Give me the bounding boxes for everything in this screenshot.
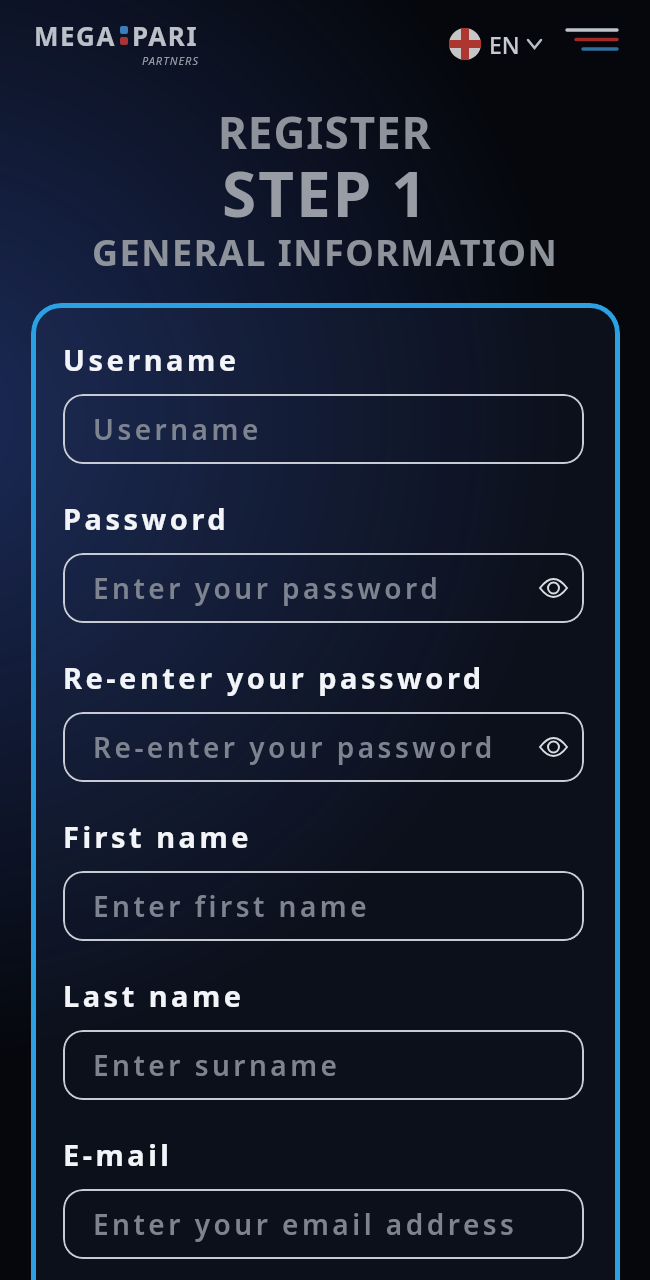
- staticText: E-mail: [63, 1135, 173, 1174]
- staticText: EN: [489, 29, 520, 60]
- staticText: Enter your email address: [93, 1205, 584, 1243]
- staticText: PARTNERS: [142, 53, 199, 68]
- staticText: Enter surname: [93, 1046, 584, 1084]
- button[interactable]: Re-enter your password: [63, 712, 584, 782]
- staticText: Enter first name: [93, 887, 584, 925]
- button[interactable]: Enter surname: [63, 1030, 584, 1100]
- staticText: MEGA: [34, 18, 116, 53]
- staticText: STEP 1: [222, 151, 429, 235]
- button[interactable]: Enter your email address: [63, 1189, 584, 1259]
- button[interactable]: EN: [449, 28, 541, 60]
- staticText: GENERAL INFORMATION: [92, 228, 559, 277]
- staticText: Re-enter your password: [93, 728, 539, 766]
- staticText: Username: [93, 410, 584, 448]
- staticText: Enter your password: [93, 569, 539, 607]
- button[interactable]: Username: [63, 394, 584, 464]
- staticText: Password: [63, 499, 230, 538]
- button[interactable]: [567, 28, 617, 52]
- staticText: REGISTER: [218, 102, 432, 162]
- staticText: Last name: [63, 976, 245, 1015]
- button[interactable]: Enter your password: [63, 553, 584, 623]
- staticText: PARI: [132, 18, 199, 53]
- button[interactable]: Enter first name: [63, 871, 584, 941]
- staticText: Username: [63, 340, 240, 379]
- staticText: Re-enter your password: [63, 658, 485, 697]
- button[interactable]: MEGA: [34, 18, 199, 68]
- staticText: First name: [63, 817, 253, 856]
